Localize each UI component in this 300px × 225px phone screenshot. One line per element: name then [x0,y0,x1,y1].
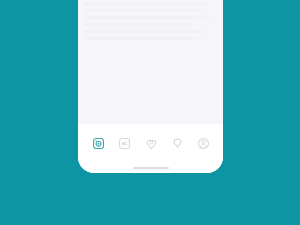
button[interactable]: Offers [166,128,188,158]
button[interactable]: Wallet [113,128,135,158]
button[interactable]: Home [87,128,109,158]
button[interactable]: Location [140,128,162,158]
button[interactable]: Profile [192,128,214,158]
